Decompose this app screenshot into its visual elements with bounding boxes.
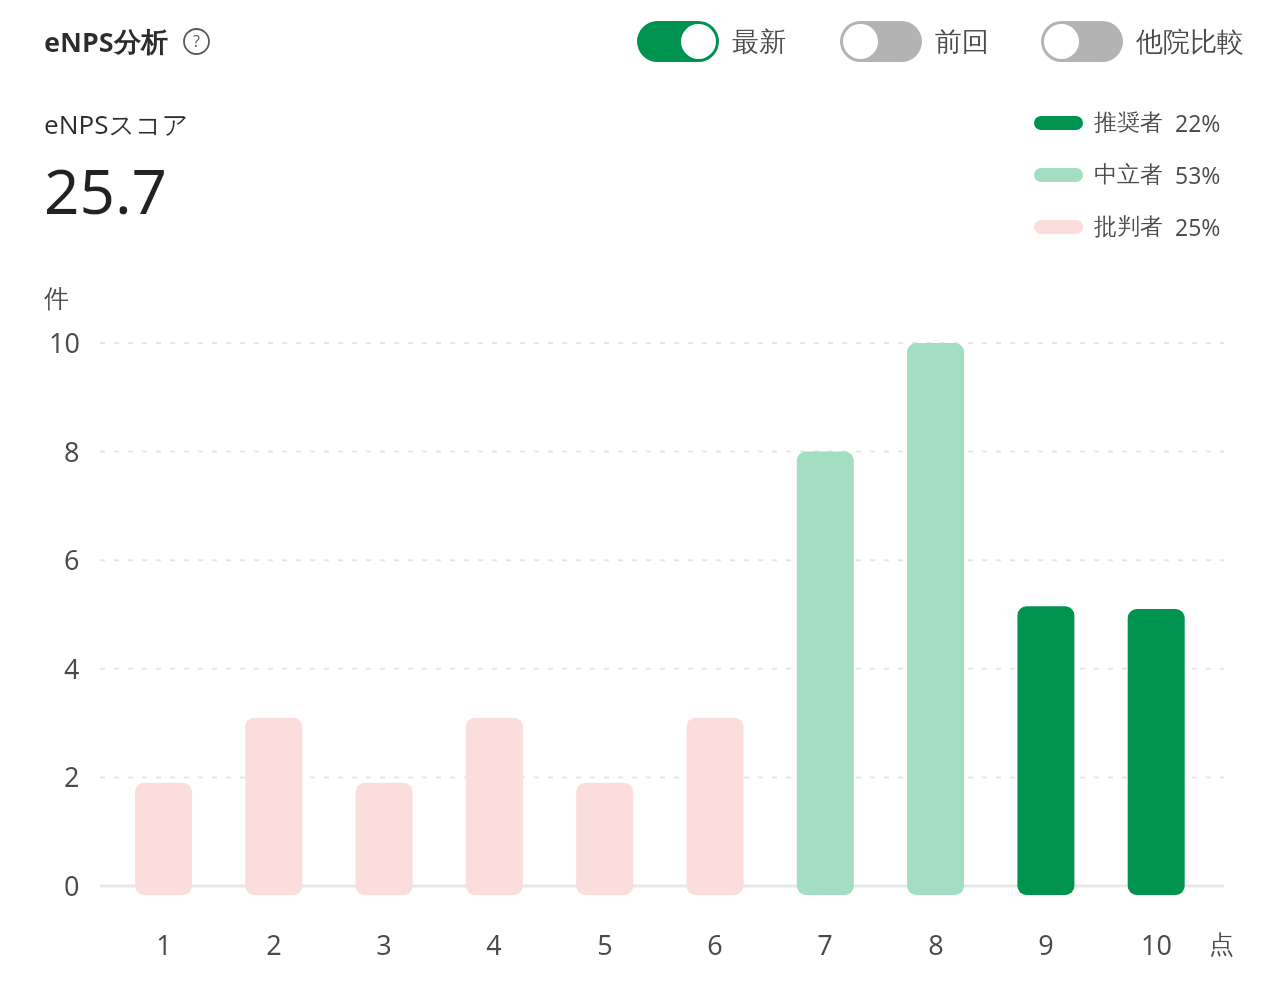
staticText: 3 [376,926,392,963]
staticText: 5 [597,926,613,963]
staticText: 22% [1175,107,1221,138]
staticText: ? [193,30,200,52]
staticText: 4 [486,926,502,963]
staticText: 最新 [732,25,786,59]
staticText: 6 [707,926,723,963]
button[interactable]: 最新 [637,21,786,62]
staticText: 10 [49,324,80,361]
staticText: 8 [928,926,944,963]
staticText: 2 [64,758,80,795]
staticText: 6 [64,541,80,578]
staticText: 0 [64,867,80,904]
staticText: 2 [266,926,282,963]
staticText: 件 [44,283,69,314]
staticText: 7 [817,926,833,963]
staticText: eNPSスコア [44,106,189,142]
staticText: 批判者 [1094,212,1163,241]
staticText: 9 [1038,926,1054,963]
staticText: 25% [1175,211,1221,242]
staticText: eNPS分析 [44,23,168,60]
staticText: 点 [1209,929,1234,960]
staticText: 4 [64,650,80,687]
staticText: 他院比較 [1136,25,1244,59]
staticText: 1 [156,926,172,963]
button[interactable]: 他院比較 [1041,21,1244,62]
staticText: 25.7 [44,148,168,232]
button[interactable]: 中立者 [1034,159,1221,190]
staticText: 8 [64,433,80,470]
staticText: 10 [1141,926,1172,963]
button[interactable]: ヘルプ [180,25,212,57]
staticText: 53% [1175,159,1221,190]
button[interactable]: 推奨者 [1034,107,1221,138]
staticText: 推奨者 [1094,108,1163,137]
staticText: 中立者 [1094,160,1163,189]
button[interactable]: 前回 [840,21,989,62]
button[interactable]: 批判者 [1034,211,1221,242]
staticText: 前回 [935,25,989,59]
